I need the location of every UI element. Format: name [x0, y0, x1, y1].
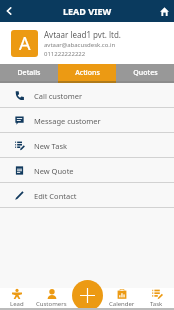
staticText: Lead — [10, 300, 24, 308]
staticText: New Task — [34, 141, 67, 151]
staticText: A — [19, 31, 31, 56]
staticText: Task — [150, 300, 163, 308]
button[interactable]: Quotes — [116, 64, 174, 81]
staticText: Message customer — [34, 116, 101, 126]
staticText: avtaar@abacusdesk.co.in — [44, 41, 116, 49]
button[interactable]: Call customer — [0, 83, 174, 108]
staticText: New Quote — [34, 166, 74, 176]
button[interactable]: Home — [154, 1, 174, 21]
button[interactable]: Task — [139, 288, 174, 309]
staticText: LEAD VIEW — [63, 5, 112, 17]
staticText: Calender — [109, 300, 135, 308]
button[interactable]: New Task — [0, 133, 174, 158]
button[interactable]: Add — [72, 280, 103, 310]
button[interactable]: Back — [0, 2, 18, 20]
button[interactable]: Message customer — [0, 108, 174, 133]
staticText: Details — [17, 68, 41, 78]
button[interactable]: Details — [0, 64, 58, 81]
button[interactable]: Calender — [104, 288, 139, 309]
button[interactable]: New Quote — [0, 158, 174, 183]
staticText: Call customer — [34, 91, 83, 101]
staticText: 011222222222 — [44, 50, 86, 58]
button[interactable]: Edit Contact — [0, 183, 174, 208]
button[interactable]: Actions — [58, 64, 116, 81]
button[interactable]: Customers — [34, 288, 69, 309]
staticText: Actions — [75, 68, 100, 78]
button[interactable]: Lead — [0, 288, 34, 309]
staticText: Edit Contact — [34, 191, 77, 201]
staticText: Quotes — [133, 68, 158, 78]
staticText: Customers — [36, 300, 67, 308]
staticText: Avtaar lead1 pvt. ltd. — [44, 29, 122, 40]
